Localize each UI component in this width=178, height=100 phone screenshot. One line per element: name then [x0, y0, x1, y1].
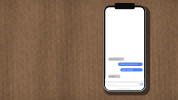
button[interactable]: Morning! Coffee? [108, 57, 124, 61]
button[interactable]: Yes please, same as usual [118, 62, 143, 66]
button[interactable]: Send [140, 83, 143, 86]
button[interactable]: Message field [107, 82, 140, 86]
staticText: Morning! Coffee? [109, 58, 121, 60]
staticText: Perfect! [109, 76, 114, 77]
staticText: Yes please, same as usual [119, 63, 137, 65]
button[interactable]: Perfect! [108, 75, 120, 78]
staticText: iMessage [109, 83, 116, 85]
button[interactable]: Be there in ten mins [120, 68, 143, 72]
staticText: Be there in ten mins [122, 69, 134, 71]
